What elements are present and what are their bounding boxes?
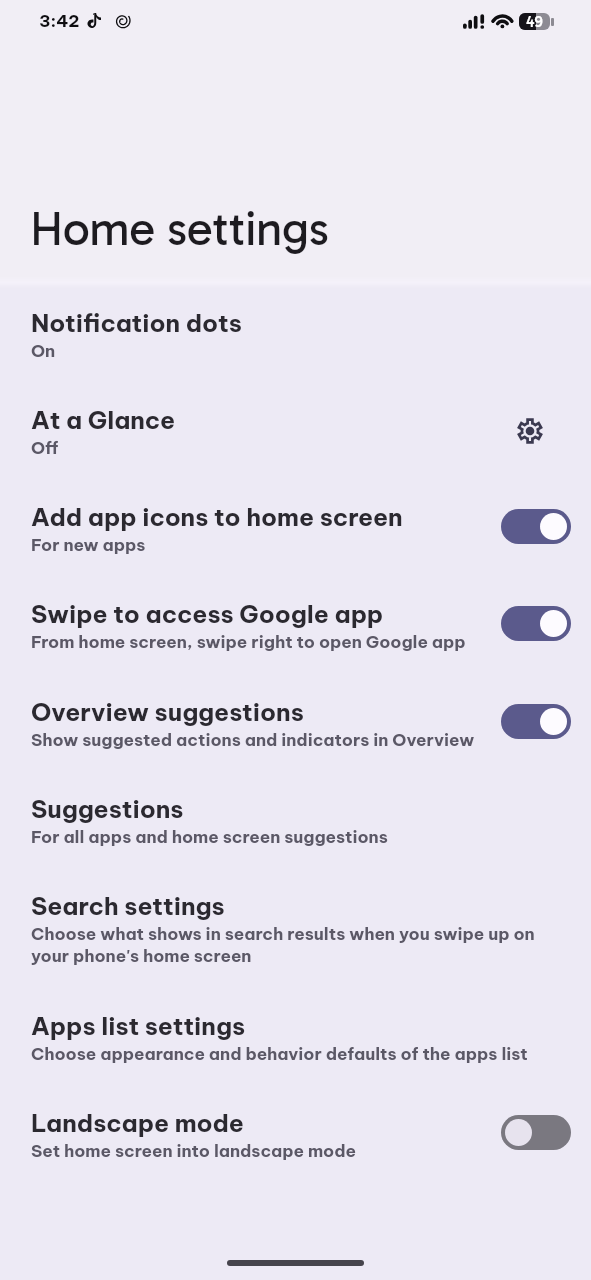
button[interactable]: At a Glance: [0, 392, 591, 462]
staticText: Suggestions: [31, 793, 184, 824]
staticText: Choose appearance and behavior defaults …: [31, 1043, 528, 1065]
staticText: From home screen, swipe right to open Go…: [31, 631, 466, 653]
staticText: Notification dots: [31, 307, 242, 338]
staticText: 3:42: [39, 10, 80, 32]
button[interactable]: Swipe to access Google app: [0, 586, 591, 656]
button[interactable]: Suggestions: [0, 781, 591, 851]
button[interactable]: At a Glance settings: [506, 407, 554, 455]
staticText: Search settings: [31, 890, 225, 921]
staticText: Home settings: [30, 200, 329, 257]
staticText: At a Glance: [31, 404, 176, 435]
button[interactable]: Enabled: [501, 703, 571, 739]
button[interactable]: Enabled: [501, 508, 571, 544]
button[interactable]: Search settings: [0, 878, 591, 970]
staticText: Choose what shows in search results when…: [31, 923, 543, 967]
staticText: Off: [31, 437, 59, 459]
staticText: Swipe to access Google app: [31, 598, 384, 629]
staticText: For all apps and home screen suggestions: [31, 826, 388, 848]
button[interactable]: Notification dots: [0, 295, 591, 365]
button[interactable]: Overview suggestions: [0, 684, 591, 754]
button[interactable]: Add app icons to home screen: [0, 489, 591, 559]
staticText: Landscape mode: [31, 1107, 244, 1138]
button[interactable]: Apps list settings: [0, 998, 591, 1068]
button[interactable]: Landscape mode: [0, 1095, 591, 1165]
staticText: Apps list settings: [31, 1010, 246, 1041]
staticText: Add app icons to home screen: [31, 501, 403, 532]
staticText: For new apps: [31, 534, 146, 556]
button[interactable]: Enabled: [501, 605, 571, 641]
staticText: Set home screen into landscape mode: [31, 1140, 356, 1162]
staticText: Overview suggestions: [31, 696, 304, 727]
staticText: Show suggested actions and indicators in…: [31, 729, 475, 751]
button[interactable]: Disabled: [501, 1114, 571, 1150]
staticText: 49: [526, 13, 543, 30]
staticText: On: [31, 340, 56, 362]
